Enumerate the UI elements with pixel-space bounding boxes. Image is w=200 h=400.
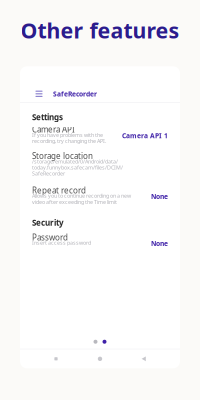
button[interactable]: Password	[32, 232, 168, 248]
button[interactable]: Storage location	[32, 150, 168, 177]
button[interactable]: Menu	[33, 88, 45, 100]
staticText: SafeRecorder	[53, 89, 97, 98]
staticText: today.funnybox.safecam/files/DCIM/	[32, 164, 123, 171]
staticText: /storage/emulated/0/Android/data/	[32, 158, 118, 165]
staticText: SafeRecorder	[32, 170, 65, 177]
staticText: Repeat record	[32, 185, 86, 196]
staticText: Camera API 1	[122, 131, 168, 140]
staticText: recording, try changing the API.	[32, 137, 106, 145]
button[interactable]: Recent apps	[48, 351, 64, 367]
staticText: Security	[32, 217, 64, 228]
staticText: Insert access password	[32, 239, 91, 246]
staticText: None	[151, 239, 168, 248]
staticText: None	[151, 192, 168, 201]
button[interactable]: Home	[92, 351, 108, 367]
staticText: Other features	[20, 16, 179, 44]
staticText: Settings	[32, 112, 63, 122]
staticText: Allows you to continue recording on a ne…	[32, 192, 131, 199]
staticText: Password	[32, 232, 68, 243]
staticText: If you have problems with the	[32, 131, 103, 138]
button[interactable]: Back	[136, 351, 152, 367]
staticText: Camera API	[32, 124, 75, 135]
button[interactable]: Repeat record	[32, 185, 168, 205]
staticText: video after exceeding the Time limit	[32, 198, 117, 205]
button[interactable]: Camera API	[32, 124, 168, 145]
staticText: Storage location	[32, 150, 93, 161]
